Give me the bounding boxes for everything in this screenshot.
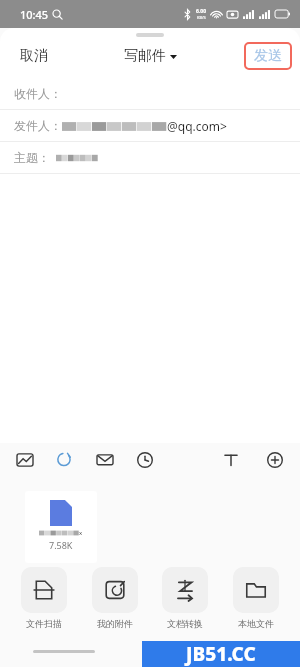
staticText: x [79, 529, 83, 537]
button[interactable]: 本地文件 [228, 567, 284, 629]
button[interactable]: 收件人： [0, 78, 300, 109]
staticText: 我的附件 [97, 618, 133, 629]
button[interactable]: 发件人： [0, 110, 300, 141]
button[interactable]: x [25, 491, 97, 563]
button[interactable]: 发送 [247, 45, 289, 67]
button[interactable]: Text format [216, 445, 246, 475]
staticText: 主题： [14, 150, 50, 165]
button[interactable]: Schedule [130, 445, 160, 475]
staticText: JB51.CC [186, 641, 256, 667]
button[interactable]: Mail [90, 445, 120, 475]
staticText: 写邮件 [124, 47, 166, 65]
staticText: 文件扫描 [26, 618, 62, 629]
staticText: 6.00 [196, 8, 206, 15]
staticText: 发送 [254, 47, 282, 65]
staticText: 发件人： [14, 118, 62, 133]
button[interactable]: 文档转换 [157, 567, 213, 629]
staticText: @qq.com> [167, 118, 227, 134]
button[interactable]: 取消 [14, 43, 54, 69]
button[interactable]: Insert image [10, 445, 40, 475]
button[interactable]: 文件扫描 [16, 567, 72, 629]
staticText: 收件人： [14, 86, 62, 101]
staticText: 7.58K [49, 539, 73, 551]
button[interactable]: 写邮件 [118, 43, 183, 69]
staticText: 本地文件 [238, 618, 274, 629]
button[interactable]: 我的附件 [87, 567, 143, 629]
button[interactable]: More [260, 445, 290, 475]
staticText: 文档转换 [167, 618, 203, 629]
button[interactable]: 主题： [0, 142, 300, 173]
button[interactable]: Attachment [50, 445, 80, 475]
staticText: 10:45 [20, 7, 49, 22]
staticText: KB/S [197, 15, 206, 20]
staticText: 取消 [20, 47, 48, 65]
